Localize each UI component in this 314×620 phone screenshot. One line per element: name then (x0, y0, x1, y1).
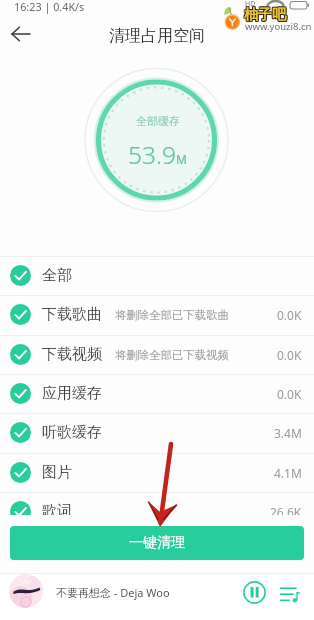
staticText: 柚子吧 (244, 7, 286, 25)
staticText: 全部 (42, 266, 72, 285)
button[interactable]: 听歌缓存 (0, 413, 314, 452)
staticText: 听歌缓存 (42, 423, 102, 442)
button[interactable]: 歌词 (0, 492, 314, 515)
button[interactable]: 全部 (0, 256, 314, 295)
staticText: 清理占用空间 (109, 26, 205, 46)
staticText: 16:23 | 0.4K/s (14, 0, 85, 14)
staticText: 下载歌曲 (42, 305, 102, 324)
staticText: 0.0K (277, 307, 302, 323)
staticText: 将删除全部已下载视频 (115, 348, 229, 362)
button[interactable]: 应用缓存 (0, 374, 314, 413)
staticText: 柚子吧 (244, 6, 286, 24)
staticText: 柚子吧 (243, 6, 285, 24)
button[interactable]: Back (6, 20, 34, 48)
button[interactable]: 下载视频 (0, 335, 314, 374)
button[interactable]: 图片 (0, 453, 314, 492)
staticText: HD (245, 0, 256, 9)
staticText: 柚子吧 (243, 7, 285, 25)
staticText: 下载视频 (42, 345, 102, 364)
staticText: 柚子吧 (245, 6, 287, 24)
staticText: 一键清理 (129, 534, 185, 552)
staticText: 柚子吧 (245, 7, 287, 25)
staticText: 0.0K (277, 347, 302, 363)
staticText: 不要再想念 - Deja Woo (56, 585, 170, 600)
staticText: 全部缓存 (136, 114, 180, 128)
button[interactable]: Pause (243, 581, 266, 604)
button[interactable]: 一键清理 (10, 526, 304, 560)
staticText: 26.6K (270, 504, 302, 515)
staticText: 柚子吧 (244, 5, 286, 23)
staticText: 53.9 (128, 138, 176, 171)
staticText: 歌词 (42, 502, 72, 515)
staticText: 将删除全部已下载歌曲 (115, 308, 229, 322)
staticText: www.youzi8.cn (245, 20, 312, 33)
staticText: 柚子吧 (245, 5, 287, 23)
staticText: 图片 (42, 463, 72, 482)
button[interactable]: Playlist (279, 581, 301, 603)
staticText: 4.1M (274, 465, 302, 481)
staticText: 柚子吧 (243, 5, 285, 23)
button[interactable]: 下载歌曲 (0, 295, 314, 334)
staticText: 3.4M (274, 425, 302, 441)
staticText: M (176, 151, 187, 167)
staticText: 0.0K (277, 386, 302, 402)
staticText: 应用缓存 (42, 384, 102, 403)
